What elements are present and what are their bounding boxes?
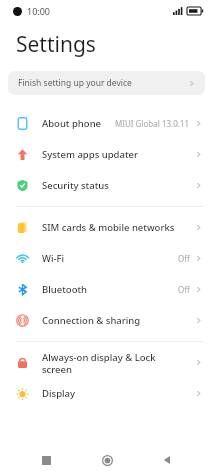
staticText: Bluetooth <box>42 283 178 296</box>
staticText: Off <box>178 284 190 295</box>
button[interactable]: Finish setting up your device <box>8 71 205 95</box>
staticText: Always-on display & Lock screen <box>42 351 195 375</box>
button[interactable]: Bluetooth <box>0 274 213 305</box>
button[interactable]: Home <box>92 446 122 474</box>
button[interactable]: Security status <box>0 170 213 201</box>
button[interactable]: Wi-Fi <box>0 243 213 274</box>
staticText: SIM cards & mobile networks <box>42 221 195 234</box>
staticText: 10:00 <box>27 5 51 17</box>
staticText: About phone <box>42 117 115 130</box>
staticText: MIUI Global 13.0.11 <box>115 118 190 129</box>
button[interactable]: About phone <box>0 108 213 139</box>
button[interactable]: System apps updater <box>0 139 213 170</box>
staticText: Connection & sharing <box>42 314 195 327</box>
button[interactable]: Display <box>0 378 213 409</box>
button[interactable]: Back <box>152 446 182 474</box>
staticText: Finish setting up your device <box>18 77 132 89</box>
button[interactable]: Always-on display & Lock screen <box>0 347 213 378</box>
button[interactable]: Recent apps <box>31 446 61 474</box>
staticText: System apps updater <box>42 148 195 161</box>
staticText: Wi-Fi <box>42 252 178 265</box>
staticText: Off <box>178 253 190 264</box>
staticText: Security status <box>42 179 195 192</box>
staticText: Display <box>42 387 195 400</box>
button[interactable]: SIM cards & mobile networks <box>0 212 213 243</box>
staticText: Settings <box>16 30 96 59</box>
button[interactable]: Connection & sharing <box>0 305 213 336</box>
